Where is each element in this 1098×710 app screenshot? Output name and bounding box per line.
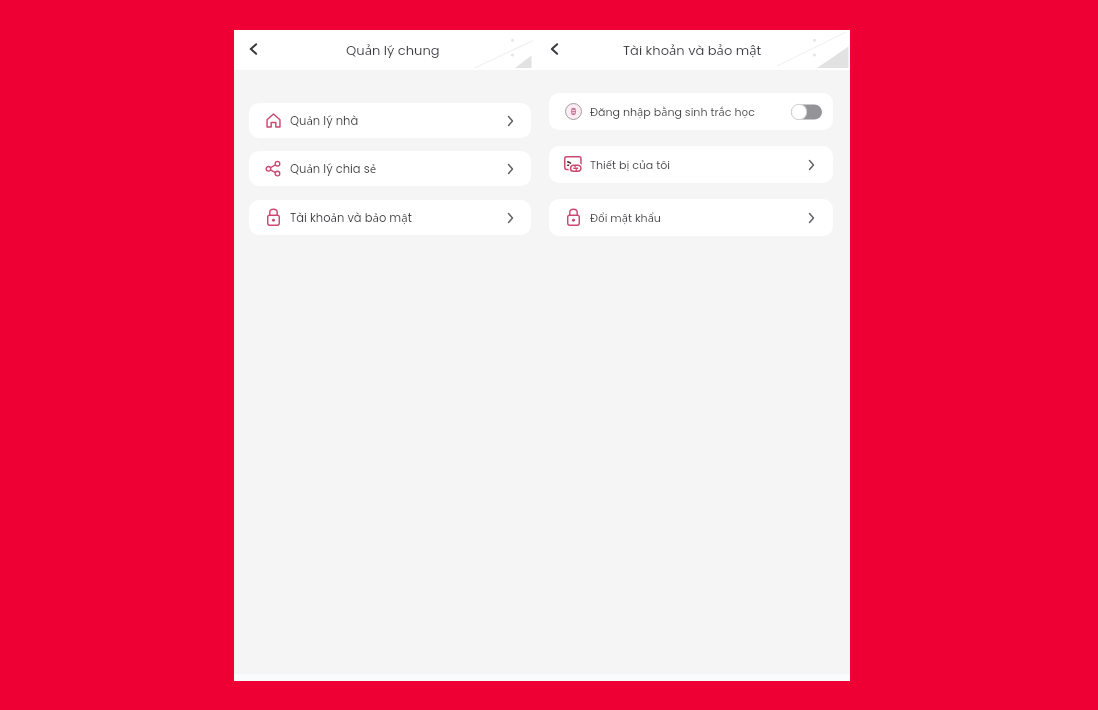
staticText: Thiết bị của tôi: [590, 157, 670, 173]
staticText: Tài khoản và bảo mật: [623, 41, 762, 60]
button[interactable]: Đăng nhập bằng sinh trắc học: [549, 93, 833, 130]
staticText: Quản lý chia sẻ: [290, 161, 377, 177]
staticText: Đăng nhập bằng sinh trắc học: [590, 104, 755, 120]
button[interactable]: Thiết bị của tôi: [549, 146, 833, 183]
button[interactable]: Quản lý chia sẻ: [249, 151, 531, 186]
button[interactable]: Biometric login toggle: [791, 104, 822, 120]
staticText: Tài khoản và bảo mật: [290, 210, 412, 226]
button[interactable]: Tài khoản và bảo mật: [249, 200, 531, 235]
button[interactable]: Đổi mật khẩu: [549, 199, 833, 236]
button[interactable]: Quản lý nhà: [249, 103, 531, 138]
staticText: Đổi mật khẩu: [590, 210, 661, 226]
button[interactable]: Back: [542, 37, 566, 61]
button[interactable]: Back: [241, 37, 265, 61]
staticText: Quản lý chung: [346, 41, 440, 60]
staticText: Quản lý nhà: [290, 113, 359, 129]
